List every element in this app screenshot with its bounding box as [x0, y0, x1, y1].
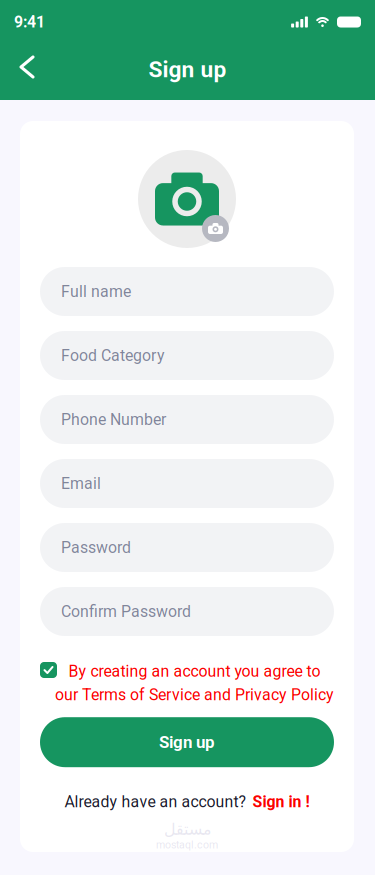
staticText: Sign up	[148, 56, 226, 83]
staticText: By creating an account you agree to	[68, 662, 320, 681]
staticText: Password	[61, 538, 131, 557]
staticText: Sign up	[159, 732, 215, 752]
staticText: Confirm Password	[61, 602, 191, 621]
button[interactable]: Sign up	[40, 717, 334, 767]
staticText: Email	[61, 474, 101, 493]
button[interactable]: Confirm Password	[40, 587, 334, 636]
button[interactable]: Agree to terms	[40, 662, 47, 682]
button[interactable]: Add profile photo	[138, 150, 236, 248]
button[interactable]: Food Category	[40, 331, 334, 380]
staticText: 9:41	[14, 13, 45, 31]
staticText: Already have an account?	[64, 792, 245, 811]
button[interactable]: Password	[40, 523, 334, 572]
button[interactable]: Sign in !	[252, 792, 309, 811]
button[interactable]: Phone Number	[40, 395, 334, 444]
staticText: Full name	[61, 282, 131, 301]
button[interactable]: Email	[40, 459, 334, 508]
staticText: our Terms of Service and Privacy Policy	[55, 686, 334, 704]
staticText: Food Category	[61, 346, 165, 365]
button[interactable]: By creating an account you agree to	[47, 662, 342, 704]
staticText: مستقل	[163, 820, 210, 839]
staticText: Sign in !	[252, 792, 309, 811]
staticText: mostaql.com	[156, 839, 218, 851]
staticText: Phone Number	[61, 410, 166, 429]
button[interactable]: Full name	[40, 267, 334, 316]
button[interactable]: Back	[0, 47, 54, 97]
